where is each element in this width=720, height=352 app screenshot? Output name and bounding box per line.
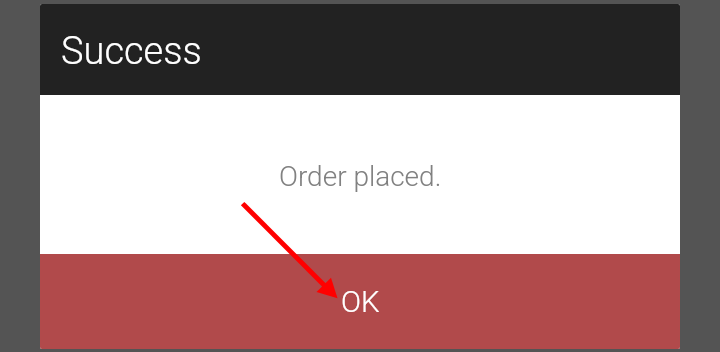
staticText: OK (341, 285, 380, 320)
staticText: Order placed. (279, 160, 442, 193)
button[interactable]: OK (40, 254, 680, 349)
staticText: Success (61, 29, 202, 74)
other: Annotation arrow pointing at OK (0, 0, 720, 352)
